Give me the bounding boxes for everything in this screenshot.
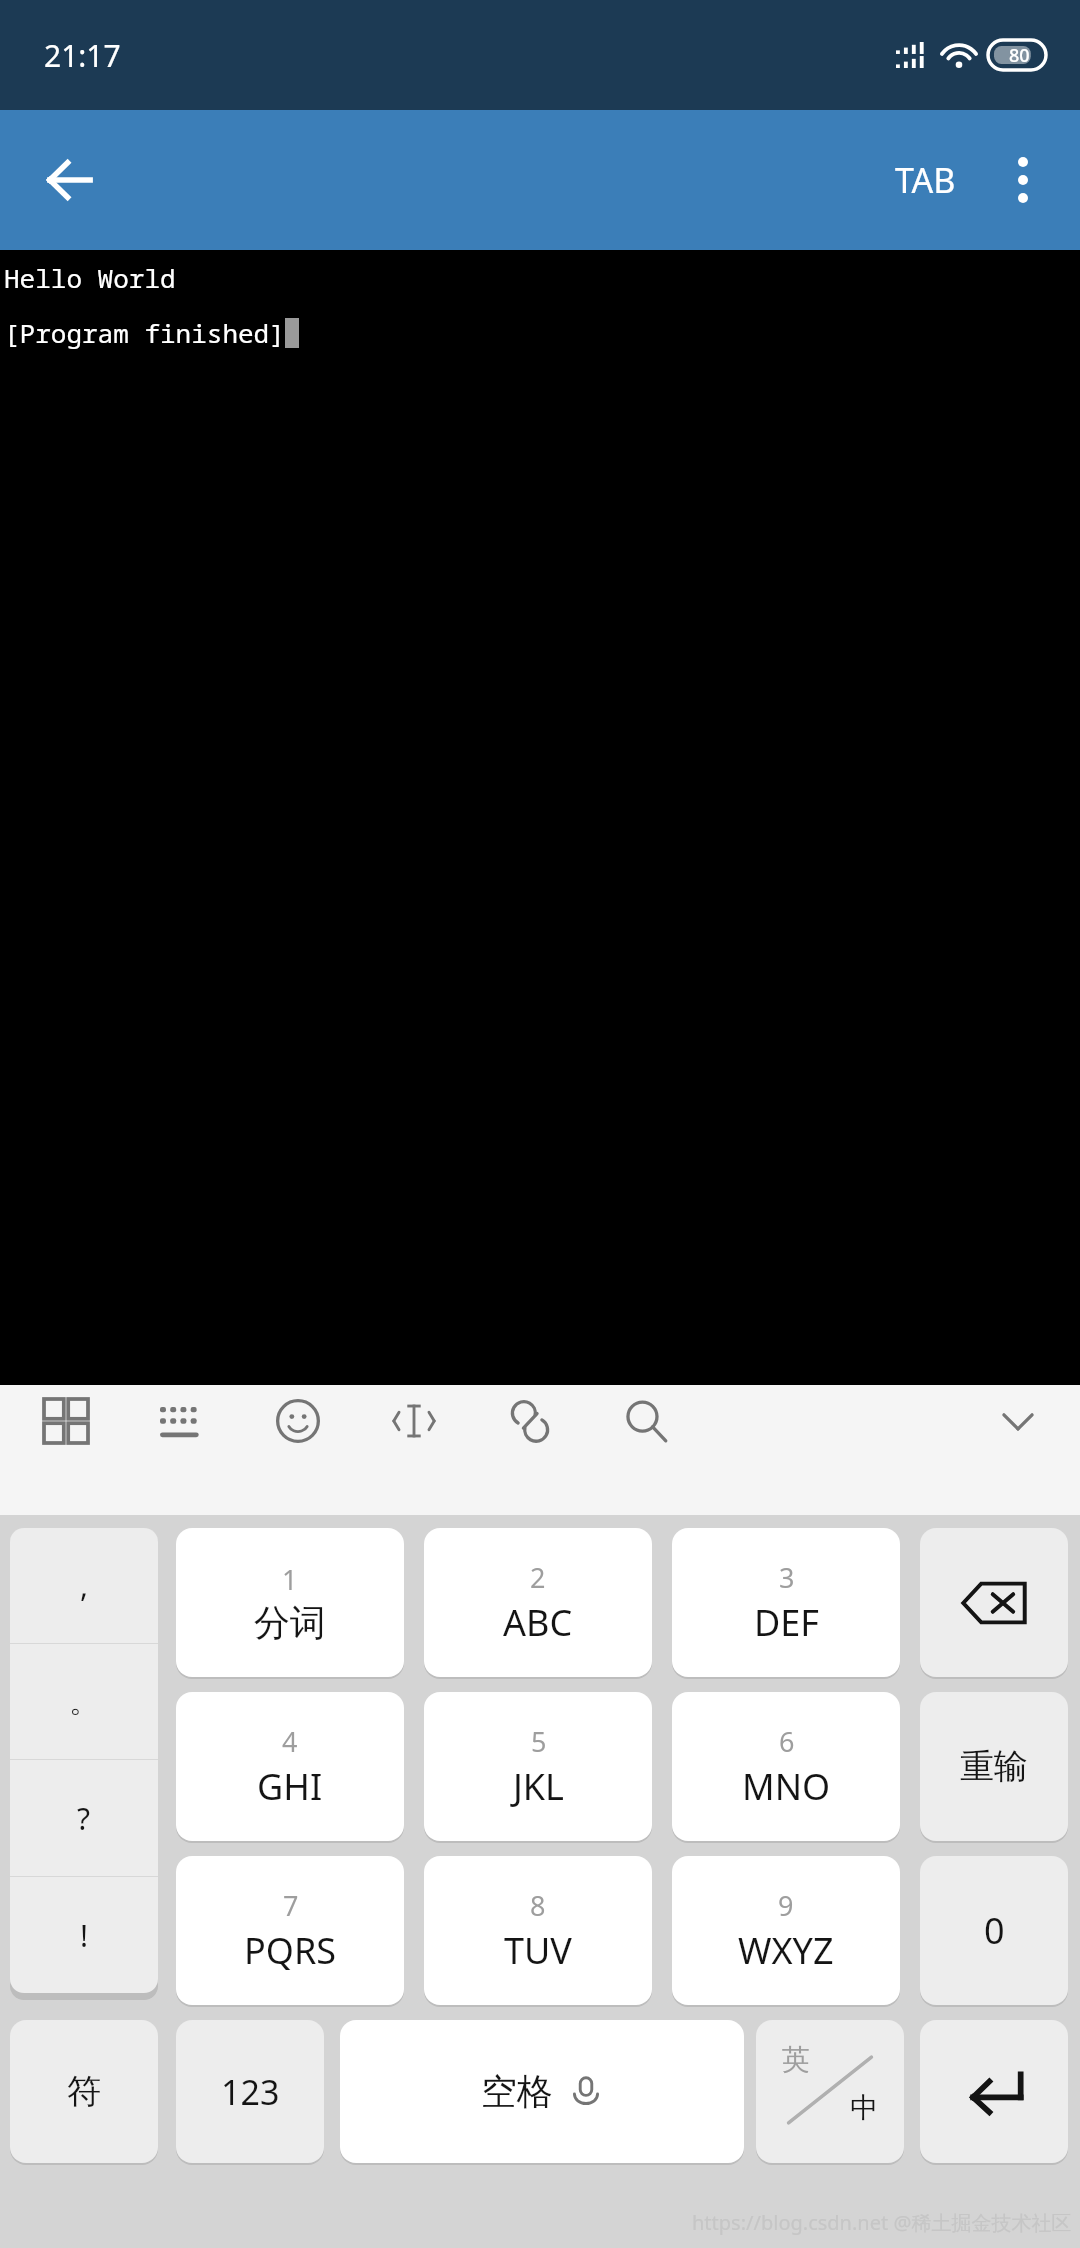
button[interactable]: Back — [30, 140, 110, 220]
button[interactable]: Move cursor — [378, 1385, 450, 1457]
staticText: 7 — [283, 1887, 299, 1924]
staticText: 3 — [779, 1559, 795, 1596]
staticText: 1 — [282, 1561, 298, 1598]
staticText: WXYZ — [738, 1926, 834, 1975]
staticText: [Program finished] — [4, 315, 285, 350]
button[interactable]: ? — [10, 1760, 158, 1876]
staticText: GHI — [257, 1762, 323, 1811]
button[interactable]: Search — [610, 1385, 682, 1457]
button[interactable]: 重输 — [920, 1692, 1068, 1841]
staticText: PQRS — [244, 1926, 337, 1975]
staticText: 0 — [984, 1906, 1005, 1955]
button[interactable]: 8 — [424, 1856, 652, 2005]
button[interactable]: 。 — [10, 1644, 158, 1759]
staticText: 空格 — [481, 2069, 553, 2114]
staticText: 重输 — [960, 1745, 1028, 1788]
button[interactable]: 7 — [176, 1856, 404, 2005]
button[interactable]: Hide keyboard — [982, 1385, 1054, 1457]
button[interactable]: 4 — [176, 1692, 404, 1841]
button[interactable]: 9 — [672, 1856, 900, 2005]
button[interactable]: Keyboard — [146, 1385, 218, 1457]
staticText: ? — [77, 1798, 91, 1839]
staticText: 80 — [1009, 43, 1030, 68]
staticText: 4 — [282, 1723, 298, 1760]
staticText: 英 — [782, 2042, 810, 2077]
button[interactable]: 123 — [176, 2020, 324, 2163]
staticText: TAB — [895, 157, 956, 203]
staticText: 21:17 — [44, 35, 121, 76]
button[interactable]: TAB — [881, 141, 970, 219]
staticText: https://blog.csdn.net @稀土掘金技术社区 — [692, 2209, 1072, 2236]
button[interactable]: Clipboard — [494, 1385, 566, 1457]
staticText: 分词 — [254, 1600, 326, 1645]
staticText: 中 — [850, 2090, 878, 2125]
staticText: Hello World — [4, 260, 176, 295]
button[interactable]: 3 — [672, 1528, 900, 1677]
button[interactable]: Enter — [920, 2020, 1068, 2163]
staticText: 符 — [67, 2070, 101, 2113]
button[interactable]: 6 — [672, 1692, 900, 1841]
staticText: , — [80, 1565, 89, 1606]
button[interactable]: 0 — [920, 1856, 1068, 2005]
button[interactable]: 英 — [756, 2020, 904, 2163]
staticText: 5 — [531, 1723, 547, 1760]
staticText: 2 — [530, 1559, 546, 1596]
staticText: 8 — [530, 1887, 546, 1924]
button[interactable]: Backspace — [920, 1528, 1068, 1677]
staticText: TUV — [504, 1926, 572, 1975]
staticText: ! — [80, 1915, 89, 1956]
button[interactable]: Panels — [30, 1385, 102, 1457]
button[interactable]: ! — [10, 1877, 158, 1993]
staticText: JKL — [513, 1762, 564, 1811]
button[interactable]: 1 — [176, 1528, 404, 1677]
staticText: 6 — [779, 1723, 795, 1760]
staticText: MNO — [742, 1762, 831, 1811]
button[interactable]: 2 — [424, 1528, 652, 1677]
button[interactable]: , — [10, 1528, 158, 1643]
button[interactable]: Emoji — [262, 1385, 334, 1457]
button[interactable]: 符 — [10, 2020, 158, 2163]
staticText: 9 — [778, 1887, 794, 1924]
staticText: 123 — [221, 2069, 280, 2115]
button[interactable]: 5 — [424, 1692, 652, 1841]
staticText: ABC — [503, 1598, 573, 1647]
button[interactable]: 空格 — [340, 2020, 744, 2163]
button[interactable]: More options — [986, 143, 1060, 217]
staticText: DEF — [754, 1598, 819, 1647]
staticText: 。 — [69, 1683, 99, 1721]
